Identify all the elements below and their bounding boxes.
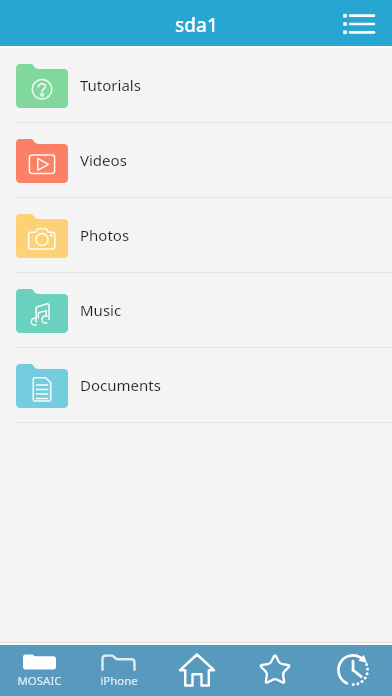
staticText: Tutorials — [80, 75, 141, 95]
button[interactable]: Menu — [340, 2, 382, 44]
button[interactable]: Recent — [314, 645, 392, 696]
staticText: Videos — [80, 150, 127, 170]
button[interactable]: Home — [158, 645, 236, 696]
staticText: sda1 — [175, 12, 218, 38]
staticText: Photos — [80, 225, 130, 245]
staticText: iPhone — [100, 673, 138, 689]
button[interactable]: Videos — [0, 123, 392, 197]
button[interactable]: Tutorials — [0, 48, 392, 122]
staticText: Documents — [80, 375, 161, 395]
staticText: Music — [80, 300, 122, 320]
button[interactable]: MOSAIC — [0, 645, 79, 696]
button[interactable]: Music — [0, 273, 392, 347]
staticText: MOSAIC — [17, 673, 62, 689]
button[interactable]: iPhone — [79, 645, 158, 696]
button[interactable]: Favorites — [236, 645, 314, 696]
button[interactable]: Documents — [0, 348, 392, 422]
button[interactable]: Photos — [0, 198, 392, 272]
